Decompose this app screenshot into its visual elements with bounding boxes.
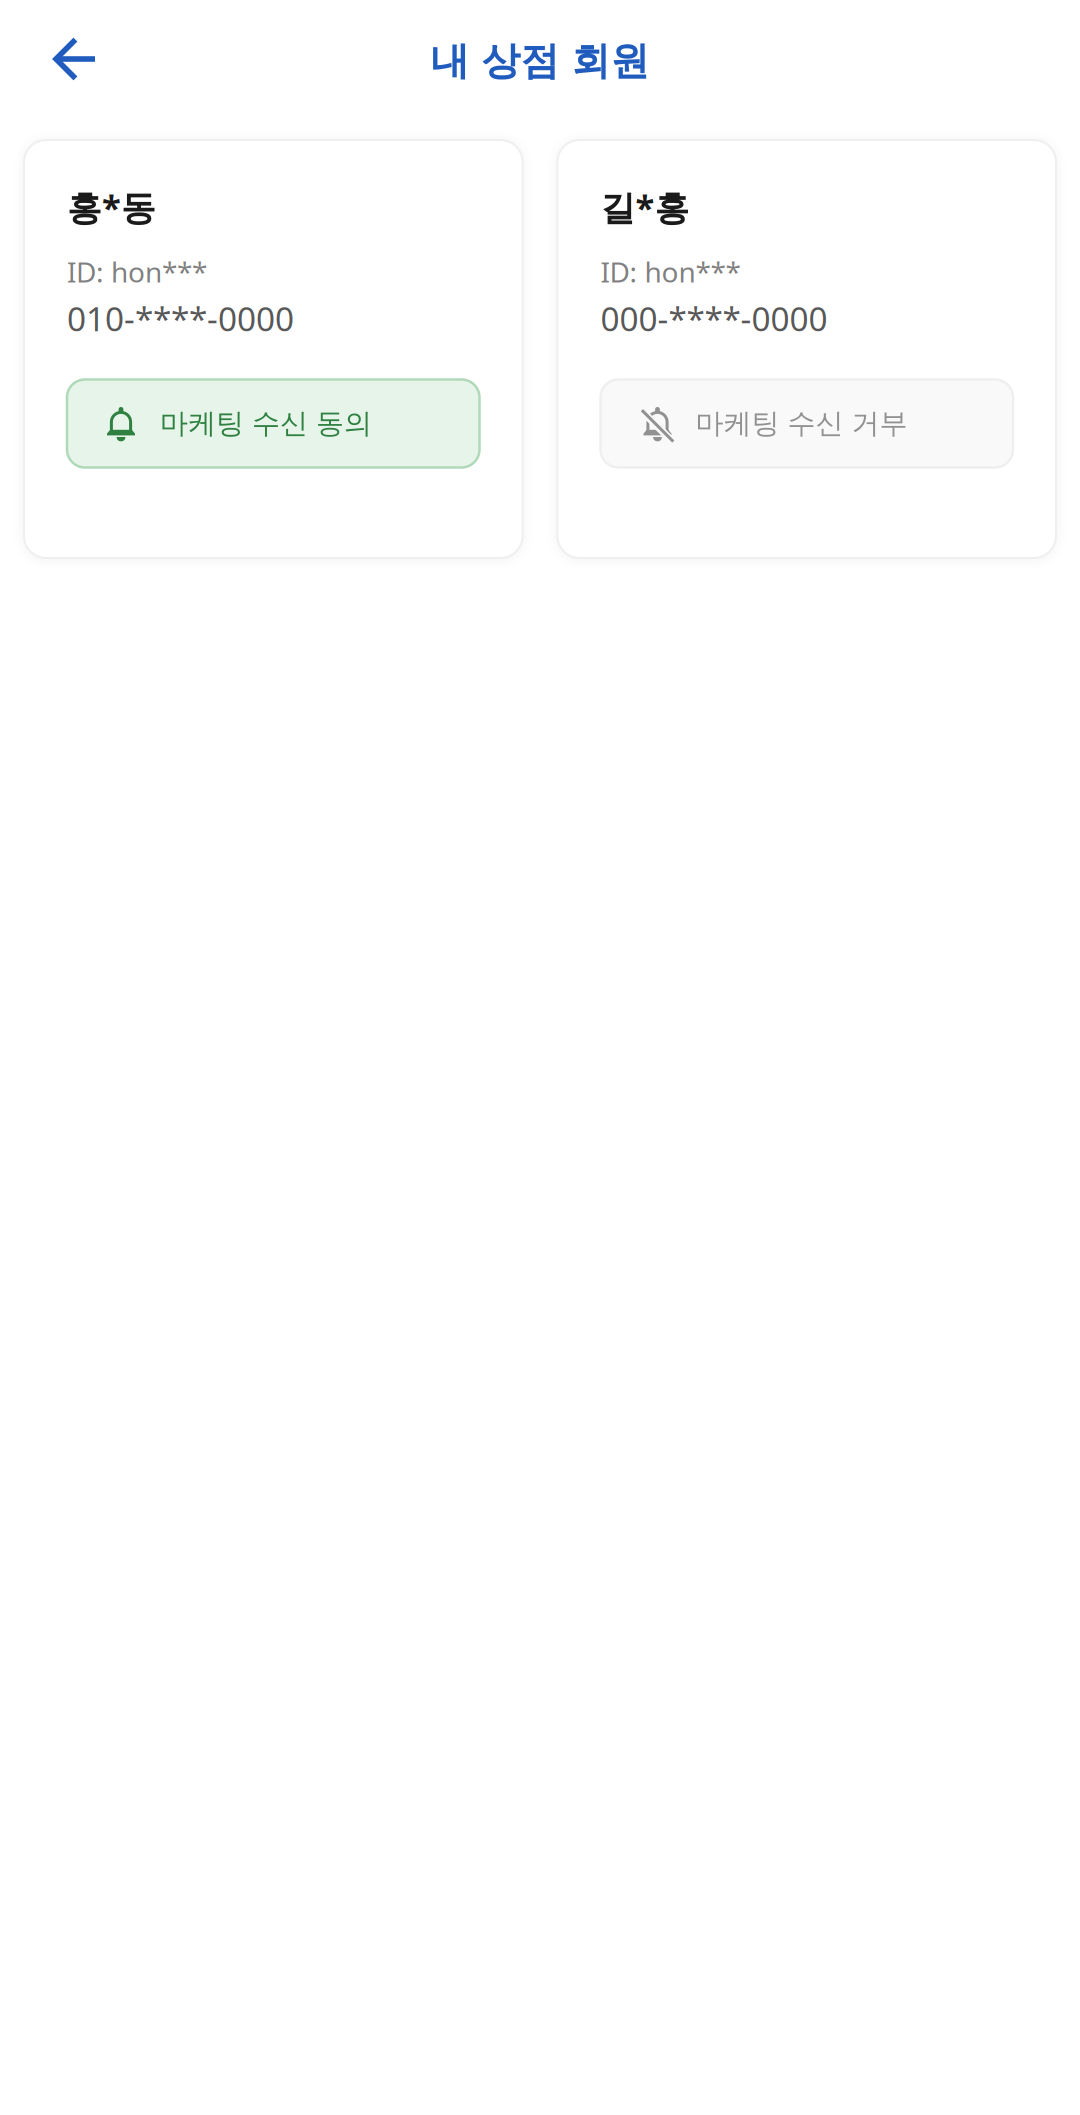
button[interactable]: 마케팅 수신 거부 [600,379,1013,467]
button[interactable]: 마케팅 수신 동의 [67,379,479,467]
staticText: ID: hon*** [67,253,207,290]
staticText: 000-****-0000 [600,296,827,340]
staticText: 010-****-0000 [67,296,294,340]
staticText: 길*홍 [600,184,689,230]
staticText: 홍*동 [67,184,156,230]
staticText: 내 상점 회원 [430,37,649,85]
staticText: 마케팅 수신 동의 [160,406,372,441]
staticText: ID: hon*** [600,253,740,290]
staticText: 마케팅 수신 거부 [695,406,907,441]
button[interactable]: Back [0,0,121,122]
